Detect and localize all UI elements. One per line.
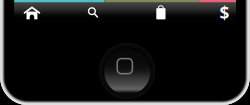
button[interactable]: Home xyxy=(0,0,250,105)
button[interactable]: Search xyxy=(0,0,250,105)
staticText: $ xyxy=(220,1,230,24)
button[interactable]: Store xyxy=(0,0,250,105)
button[interactable]: Bag xyxy=(0,0,250,105)
